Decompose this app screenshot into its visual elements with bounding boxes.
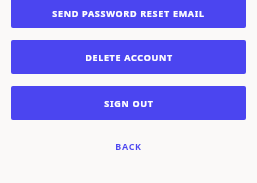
staticText: BACK xyxy=(115,140,142,152)
staticText: DELETE ACCOUNT xyxy=(85,51,173,63)
button[interactable]: SEND PASSWORD RESET EMAIL xyxy=(11,0,246,28)
button[interactable]: SIGN OUT xyxy=(11,86,246,120)
button[interactable]: BACK xyxy=(11,132,246,160)
staticText: SEND PASSWORD RESET EMAIL xyxy=(52,7,205,19)
staticText: SIGN OUT xyxy=(104,97,154,109)
button[interactable]: DELETE ACCOUNT xyxy=(11,40,246,74)
